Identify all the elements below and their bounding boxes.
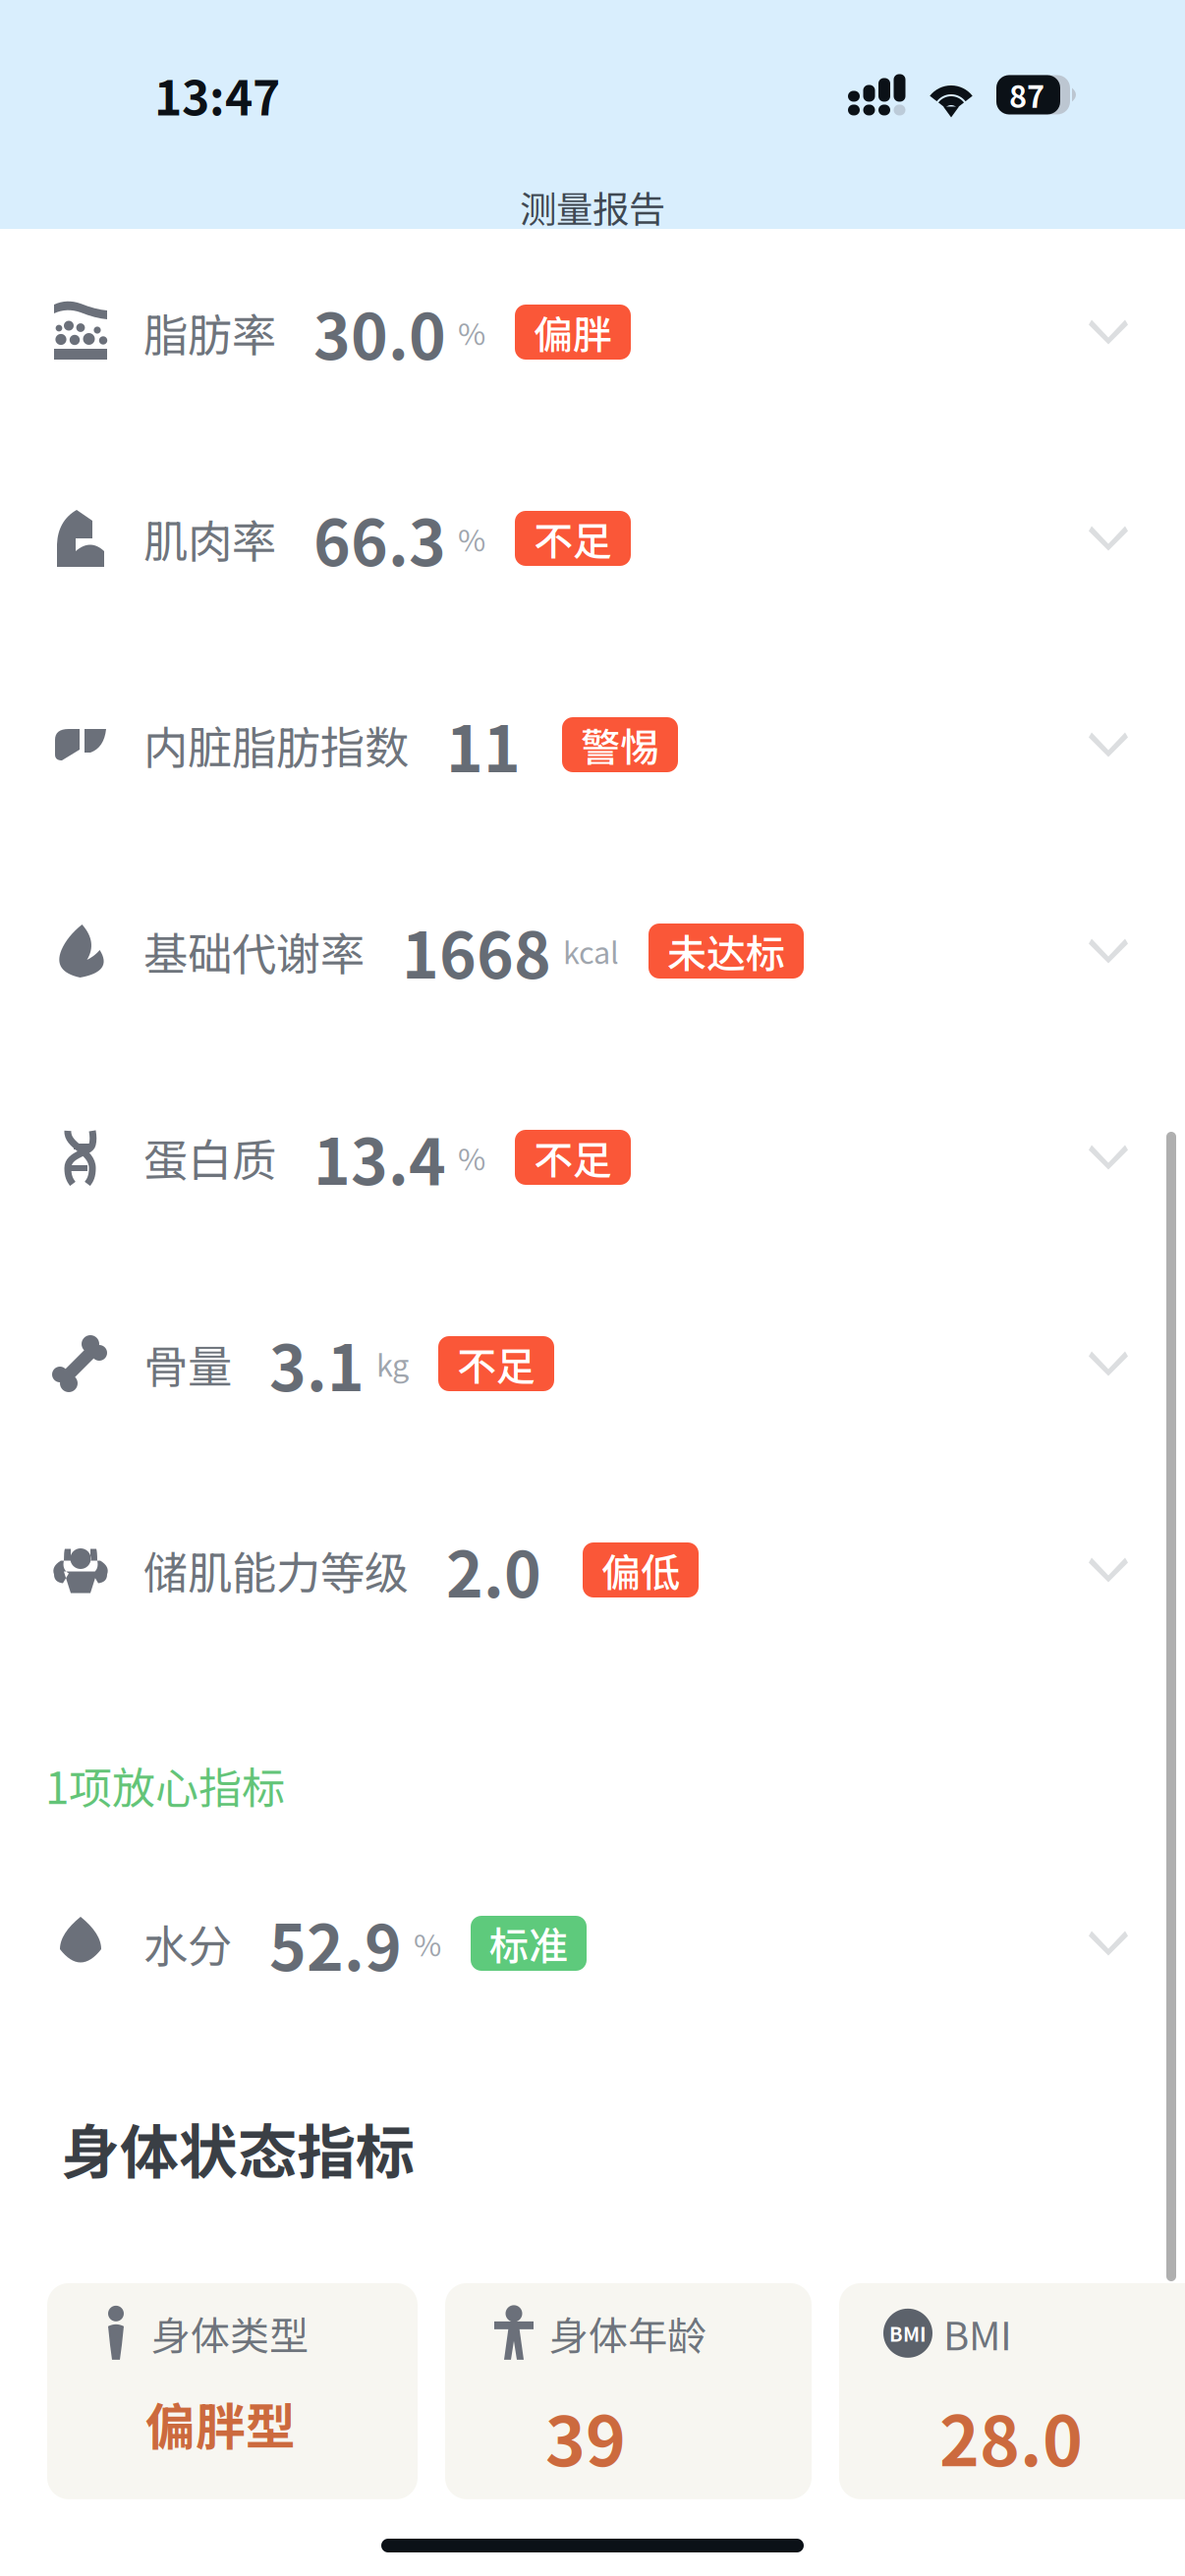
staticText: 身体状态指标	[61, 2105, 415, 2191]
button[interactable]: 身体年龄	[445, 2283, 812, 2499]
staticText: %	[414, 1921, 441, 1965]
staticText: 87	[1009, 73, 1044, 117]
button[interactable]: 身体类型	[47, 2283, 418, 2499]
staticText: 28.0	[939, 2387, 1083, 2486]
staticText: %	[458, 517, 485, 560]
staticText: 身体年龄	[549, 2305, 706, 2362]
staticText: 肌肉率	[143, 506, 276, 571]
staticText: 13.4	[313, 1112, 446, 1203]
staticText: 1项放心指标	[45, 1754, 285, 1816]
staticText: 标准	[489, 1915, 568, 1972]
staticText: 1668	[402, 906, 551, 997]
staticText: %	[458, 1136, 485, 1179]
button[interactable]: 基础代谢率	[0, 848, 1185, 1054]
button[interactable]: 蛋白质	[0, 1054, 1185, 1260]
staticText: 不足	[534, 510, 612, 567]
staticText: %	[458, 310, 485, 354]
staticText: 储肌能力等级	[143, 1538, 409, 1602]
staticText: 基础代谢率	[143, 919, 365, 983]
staticText: 13:47	[154, 61, 280, 129]
staticText: 偏胖	[534, 304, 612, 360]
staticText: 不足	[534, 1129, 612, 1186]
staticText: 30.0	[313, 287, 446, 378]
button[interactable]: 脂肪率	[0, 229, 1185, 435]
staticText: 11	[446, 699, 521, 790]
staticText: 脂肪率	[143, 300, 276, 364]
staticText: kg	[376, 1342, 409, 1385]
staticText: 偏胖型	[145, 2387, 296, 2459]
staticText: 水分	[143, 1911, 232, 1976]
staticText: 内脏脂肪指数	[143, 712, 409, 777]
staticText: 测量报告	[520, 180, 665, 233]
button[interactable]: 水分	[0, 1840, 1185, 2046]
staticText: 警惕	[581, 716, 659, 773]
staticText: 52.9	[269, 1898, 402, 1989]
button[interactable]: BMI	[839, 2283, 1185, 2499]
staticText: 未达标	[667, 923, 785, 979]
staticText: 不足	[457, 1335, 536, 1392]
button[interactable]: 储肌能力等级	[0, 1467, 1185, 1673]
button[interactable]: 内脏脂肪指数	[0, 642, 1185, 848]
staticText: 偏低	[601, 1541, 680, 1598]
staticText: 3.1	[269, 1318, 365, 1409]
staticText: BMI	[943, 2305, 1012, 2362]
staticText: 骨量	[143, 1331, 232, 1396]
staticText: 蛋白质	[143, 1125, 276, 1190]
staticText: BMI	[889, 2319, 927, 2347]
staticText: 66.3	[313, 493, 446, 584]
staticText: 2.0	[446, 1524, 541, 1616]
button[interactable]: 肌肉率	[0, 435, 1185, 642]
staticText: kcal	[563, 929, 619, 973]
staticText: 39	[545, 2387, 626, 2486]
button[interactable]: 骨量	[0, 1260, 1185, 1467]
staticText: 身体类型	[151, 2305, 309, 2362]
